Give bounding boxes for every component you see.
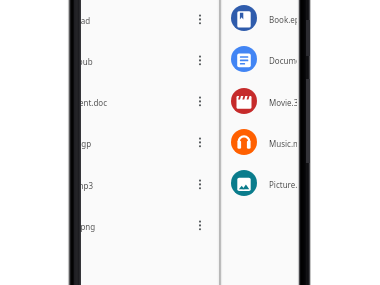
button[interactable]: Document.doc <box>220 43 300 75</box>
staticText: Book.epub <box>81 56 93 67</box>
staticText: Music.mp3 <box>81 180 94 191</box>
button[interactable]: More options <box>187 7 213 33</box>
button[interactable]: Download <box>81 4 219 36</box>
staticText: Picture.png <box>81 221 96 232</box>
button[interactable]: Book.epub <box>81 45 219 77</box>
button[interactable]: More options <box>187 130 213 156</box>
button[interactable]: More options <box>187 172 213 198</box>
staticText: Picture.png <box>269 179 300 190</box>
staticText: Music.mp3 <box>269 138 300 149</box>
button[interactable]: Music.mp3 <box>81 169 219 201</box>
button[interactable]: Book.epub <box>220 2 300 34</box>
button[interactable]: Movie.3gp <box>220 85 300 117</box>
staticText: Movie.3gp <box>81 138 92 149</box>
button[interactable]: Music.mp3 <box>220 126 300 158</box>
staticText: Book.epub <box>269 14 300 25</box>
button[interactable]: Movie.3gp <box>81 127 219 159</box>
button[interactable]: Picture.png <box>220 167 300 199</box>
button[interactable]: More options <box>187 89 213 115</box>
button[interactable]: More options <box>187 213 213 239</box>
staticText: Download <box>81 15 91 26</box>
staticText: Document.doc <box>269 55 300 66</box>
staticText: Movie.3gp <box>269 97 300 108</box>
button[interactable]: Picture.png <box>81 210 219 242</box>
button[interactable]: More options <box>187 48 213 74</box>
staticText: Document.doc <box>81 97 108 108</box>
button[interactable]: Document.doc <box>81 86 219 118</box>
